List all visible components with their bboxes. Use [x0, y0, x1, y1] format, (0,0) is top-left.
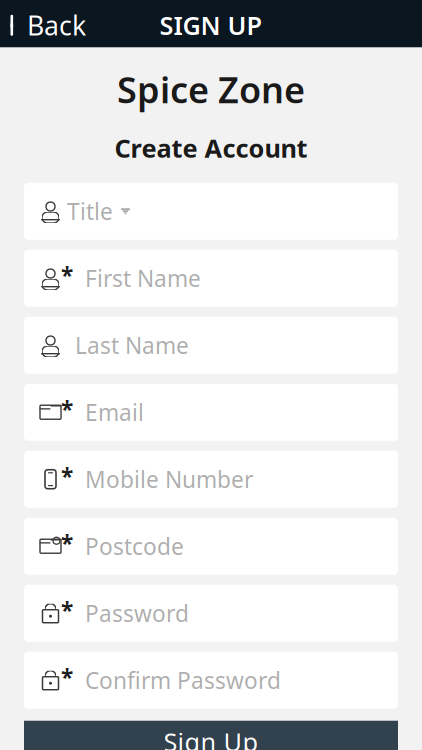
button[interactable]: * — [24, 384, 398, 441]
button[interactable]: * — [24, 652, 398, 709]
button[interactable]: Back — [0, 2, 86, 49]
button[interactable]: Last Name — [24, 317, 398, 374]
staticText: Mobile Number — [85, 464, 253, 494]
staticText: * — [61, 461, 73, 491]
staticText: * — [61, 528, 73, 558]
staticText: Spice Zone — [117, 65, 305, 113]
button[interactable]: * — [24, 451, 398, 508]
staticText: First Name — [85, 263, 201, 293]
staticText: Sign Up — [163, 725, 258, 750]
button[interactable]: * — [24, 585, 398, 642]
button[interactable]: * — [24, 250, 398, 307]
staticText: Postcode — [85, 531, 184, 561]
staticText: * — [61, 595, 73, 625]
staticText: * — [61, 394, 73, 424]
staticText: Password — [85, 598, 189, 628]
staticText: Confirm Password — [85, 665, 281, 695]
staticText: * — [61, 662, 73, 692]
button[interactable]: * — [24, 518, 398, 575]
staticText: Back — [27, 8, 86, 43]
staticText: Email — [85, 397, 144, 427]
staticText: SIGN UP — [159, 8, 262, 42]
staticText: Create Account — [114, 131, 307, 165]
staticText: * — [61, 260, 73, 290]
staticText: Title — [67, 196, 113, 226]
button[interactable]: Title — [24, 183, 398, 240]
button[interactable]: Sign Up — [24, 721, 398, 750]
staticText: Last Name — [75, 330, 189, 360]
